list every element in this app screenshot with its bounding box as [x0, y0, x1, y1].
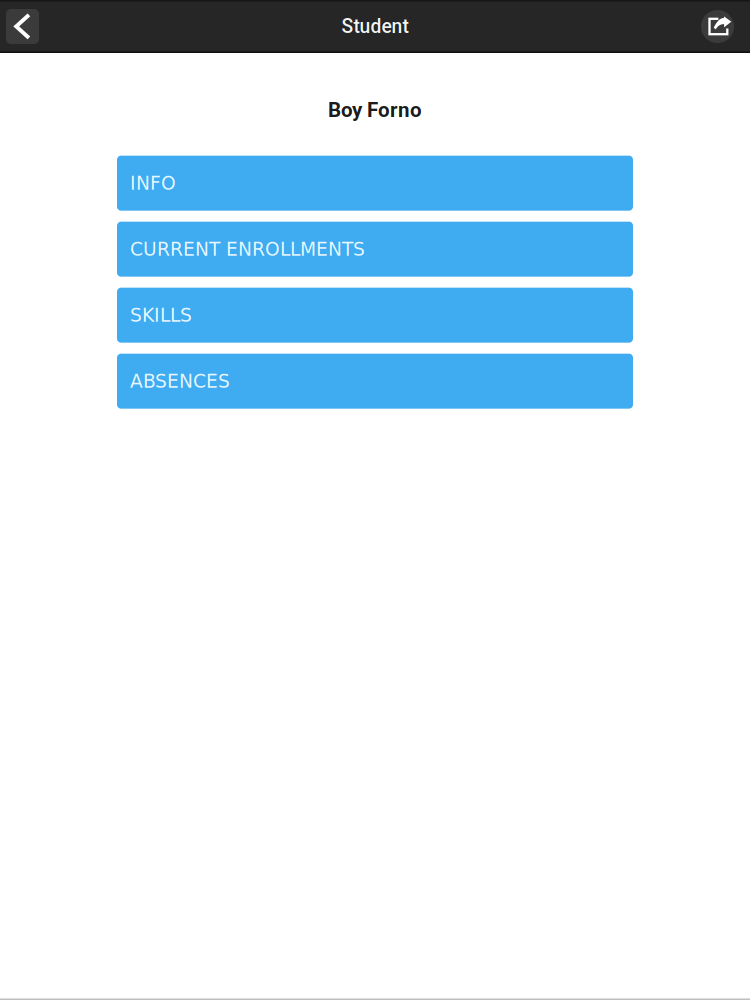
staticText: ABSENCES: [130, 370, 230, 392]
staticText: CURRENT ENROLLMENTS: [130, 238, 365, 260]
staticText: Boy Forno: [328, 98, 422, 122]
button[interactable]: ABSENCES: [117, 354, 633, 409]
button[interactable]: Share: [701, 10, 734, 43]
staticText: Student: [341, 15, 408, 38]
staticText: INFO: [130, 172, 176, 194]
button[interactable]: INFO: [117, 156, 633, 211]
button[interactable]: CURRENT ENROLLMENTS: [117, 222, 633, 277]
button[interactable]: SKILLS: [117, 288, 633, 343]
button[interactable]: Back: [6, 9, 39, 44]
staticText: SKILLS: [130, 304, 192, 326]
